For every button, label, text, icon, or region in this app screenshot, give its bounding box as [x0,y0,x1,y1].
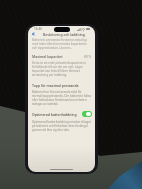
button[interactable]: Back [29,31,36,37]
staticText: Topp för maximal prestanda [32,83,79,88]
staticText: 89 % [84,55,92,59]
staticText: Batteriet har för närvarande stöd för no… [32,90,92,106]
staticText: Optimerad batteriladdning minskar slitag… [32,120,92,132]
staticText: Maximal kapacitet [32,54,63,59]
staticText: Optimerad batteriladdning [32,112,77,117]
staticText: Batteriets prestanda försämras naturligt… [32,38,92,50]
button[interactable]: Optimerad batteriladdning [32,111,92,117]
staticText: Beskrivning och laddning [43,32,85,37]
staticText: 14:46 [34,27,42,31]
staticText: Detta är ett mått på batterikapaciteten … [32,61,92,77]
